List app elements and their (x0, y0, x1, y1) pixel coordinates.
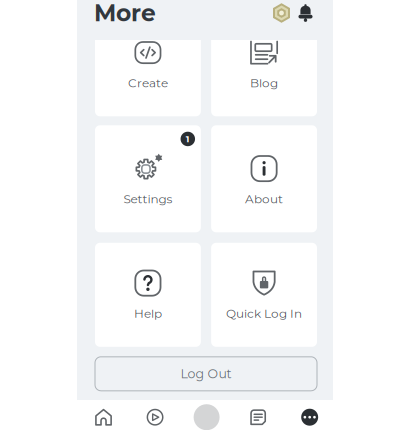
button[interactable]: Settings (95, 125, 201, 232)
staticText: Blog (250, 76, 278, 90)
staticText: About (245, 192, 283, 206)
staticText: Log Out (180, 366, 231, 381)
button[interactable]: Rewards (273, 3, 290, 23)
staticText: Quick Log In (226, 306, 302, 321)
staticText: Help (134, 306, 162, 321)
button[interactable]: Profile (181, 402, 232, 430)
button[interactable]: Log Out (95, 357, 317, 391)
button[interactable]: Create (95, 40, 201, 116)
button[interactable]: Help (95, 243, 201, 347)
button[interactable]: More (284, 402, 335, 430)
button[interactable]: Feed (232, 402, 284, 430)
staticText: More (94, 0, 156, 27)
button[interactable]: About (211, 125, 317, 232)
staticText: 1 (186, 133, 190, 145)
button[interactable]: Home (78, 402, 129, 430)
button[interactable]: Quick Log In (211, 243, 317, 347)
staticText: Settings (123, 192, 172, 206)
button[interactable]: Watch (129, 402, 181, 430)
button[interactable]: Notifications (298, 4, 313, 22)
button[interactable]: Blog (211, 40, 317, 116)
staticText: Create (128, 76, 168, 90)
